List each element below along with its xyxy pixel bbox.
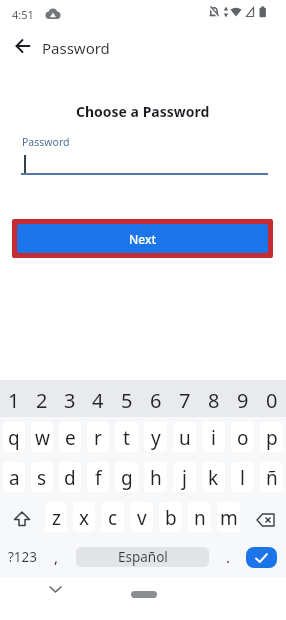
button[interactable]: w [31,422,53,452]
staticText: l [240,465,245,491]
button[interactable] [246,547,277,568]
staticText: Español [118,548,168,566]
staticText: 8 [208,387,220,414]
staticText: w [35,425,50,451]
button[interactable]: q [3,422,25,452]
button[interactable]: x [73,502,95,532]
button[interactable]: o [231,422,254,452]
staticText: 5 [121,387,133,414]
button[interactable]: ?123 [0,537,42,577]
button[interactable] [0,497,42,537]
staticText: x [79,505,90,531]
button[interactable]: m [217,502,240,532]
staticText: ñ [266,465,278,491]
staticText: q [8,425,20,451]
staticText: Password [22,135,70,149]
button[interactable]: h [144,462,167,492]
staticText: r [94,425,102,451]
staticText: n [194,505,206,531]
button[interactable]: y [144,422,167,452]
button[interactable]: 0 [257,380,286,417]
staticText: 4:51 [12,7,34,22]
button[interactable]: v [130,502,153,532]
staticText: 0 [266,387,278,414]
staticText: . [226,547,231,567]
button[interactable]: Next [17,224,268,253]
button[interactable] [243,497,286,537]
button[interactable]: t [115,422,138,452]
staticText: y [151,425,161,451]
button[interactable]: c [101,502,124,532]
button[interactable]: l [231,462,254,492]
button[interactable]: 9 [228,380,257,417]
staticText: p [266,425,278,451]
staticText: 7 [179,387,191,414]
button[interactable]: . [214,537,243,577]
button[interactable]: 3 [56,380,84,417]
button[interactable]: p [260,422,283,452]
staticText: 9 [237,387,249,414]
staticText: t [123,425,130,451]
button[interactable]: 6 [141,380,170,417]
staticText: a [9,465,20,491]
button[interactable]: , [42,537,71,577]
button[interactable]: k [202,462,225,492]
button[interactable]: 4 [84,380,112,417]
button[interactable]: f [87,462,109,492]
staticText: h [150,465,162,491]
button[interactable]: ñ [260,462,283,492]
button[interactable]: i [202,422,225,452]
staticText: Password [42,38,110,58]
staticText: c [108,505,118,531]
button[interactable]: d [59,462,81,492]
staticText: v [137,505,147,531]
button[interactable]: s [31,462,53,492]
button[interactable]: Español [76,547,209,567]
button[interactable]: 5 [112,380,141,417]
button[interactable] [131,591,157,598]
button[interactable]: 2 [28,380,56,417]
button[interactable]: 7 [170,380,199,417]
button[interactable]: 1 [0,380,28,417]
staticText: , [54,547,59,567]
staticText: 3 [64,387,76,414]
staticText: g [121,465,133,491]
button[interactable] [8,31,38,61]
staticText: o [237,425,249,451]
button[interactable]: n [188,502,211,532]
staticText: e [65,425,76,451]
staticText: z [52,505,61,531]
staticText: d [64,465,76,491]
staticText: f [95,465,102,491]
staticText: Next [129,231,157,247]
button[interactable]: e [59,422,81,452]
staticText: 2 [36,387,48,414]
staticText: u [179,425,191,451]
staticText: i [211,425,216,451]
staticText: m [220,505,238,531]
staticText: 4 [92,387,104,414]
button[interactable]: b [159,502,182,532]
button[interactable]: u [173,422,196,452]
button[interactable]: j [173,462,196,492]
button[interactable]: r [87,422,109,452]
staticText: k [208,465,219,491]
button[interactable]: 8 [199,380,228,417]
staticText: j [182,465,187,491]
staticText: s [37,465,47,491]
button[interactable]: g [115,462,138,492]
staticText: 6 [150,387,162,414]
staticText: b [165,505,177,531]
button[interactable]: a [3,462,25,492]
staticText: 1 [8,387,20,414]
button[interactable]: z [45,502,67,532]
staticText: Choose a Password [76,102,210,121]
staticText: ?123 [8,548,38,566]
